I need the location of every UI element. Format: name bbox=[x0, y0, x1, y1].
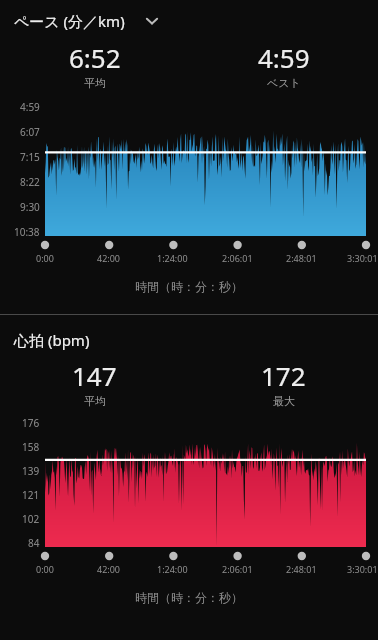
staticText: 2:48:01 bbox=[286, 252, 317, 264]
staticText: 時間（時：分：秒） bbox=[0, 590, 378, 605]
staticText: 心拍 (bpm) bbox=[14, 330, 90, 350]
staticText: 時間（時：分：秒） bbox=[0, 279, 378, 294]
staticText: 2:48:01 bbox=[286, 563, 317, 575]
staticText: 7:15 bbox=[20, 150, 40, 161]
staticText: 42:00 bbox=[97, 252, 121, 264]
staticText: 3:30:01 bbox=[347, 563, 378, 575]
staticText: 平均 bbox=[84, 76, 106, 90]
staticText: 2:06:01 bbox=[222, 252, 253, 264]
staticText: 172 bbox=[261, 358, 306, 393]
staticText: 0:00 bbox=[36, 563, 54, 575]
staticText: 147 bbox=[72, 358, 117, 393]
staticText: 42:00 bbox=[97, 563, 121, 575]
staticText: 4:59 bbox=[20, 100, 40, 111]
staticText: 102 bbox=[22, 512, 40, 523]
staticText: 9:30 bbox=[20, 200, 40, 211]
staticText: 6:52 bbox=[69, 40, 121, 75]
button[interactable]: ペース (分／km) bbox=[0, 8, 378, 34]
staticText: ペース (分／km) bbox=[14, 11, 125, 31]
staticText: 139 bbox=[22, 464, 40, 475]
staticText: 8:22 bbox=[20, 175, 40, 186]
staticText: 158 bbox=[22, 440, 40, 451]
staticText: 1:24:00 bbox=[157, 563, 188, 575]
other: Change metric bbox=[141, 10, 163, 32]
staticText: 1:24:00 bbox=[157, 252, 188, 264]
button[interactable]: 心拍 (bpm) bbox=[0, 328, 378, 352]
staticText: ベスト bbox=[267, 76, 301, 90]
staticText: 2:06:01 bbox=[222, 563, 253, 575]
staticText: 最大 bbox=[273, 394, 295, 408]
staticText: 平均 bbox=[84, 394, 106, 408]
staticText: 3:30:01 bbox=[347, 252, 378, 264]
staticText: 121 bbox=[22, 488, 40, 499]
staticText: 4:59 bbox=[258, 40, 310, 75]
staticText: 84 bbox=[28, 536, 40, 547]
staticText: 176 bbox=[22, 416, 40, 427]
staticText: 0:00 bbox=[36, 252, 54, 264]
staticText: 10:38 bbox=[14, 225, 40, 236]
staticText: 6:07 bbox=[20, 125, 40, 136]
